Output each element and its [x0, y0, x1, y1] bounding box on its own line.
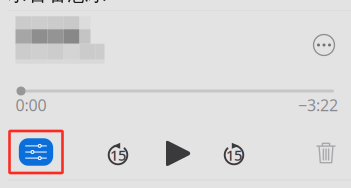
staticText: 录音备忘录 — [8, 0, 108, 6]
staticText: 0:00 — [15, 94, 46, 116]
button[interactable]: Play — [157, 132, 199, 174]
button[interactable]: Playback settings — [9, 131, 62, 173]
button[interactable]: Delete — [306, 133, 346, 173]
button[interactable]: Skip forward 15 seconds — [214, 135, 254, 175]
button[interactable]: Skip back 15 seconds — [98, 135, 138, 175]
staticText: 15 — [110, 145, 126, 165]
staticText: 15 — [226, 145, 242, 165]
button[interactable]: More — [304, 25, 344, 65]
staticText: −3:22 — [298, 94, 338, 116]
